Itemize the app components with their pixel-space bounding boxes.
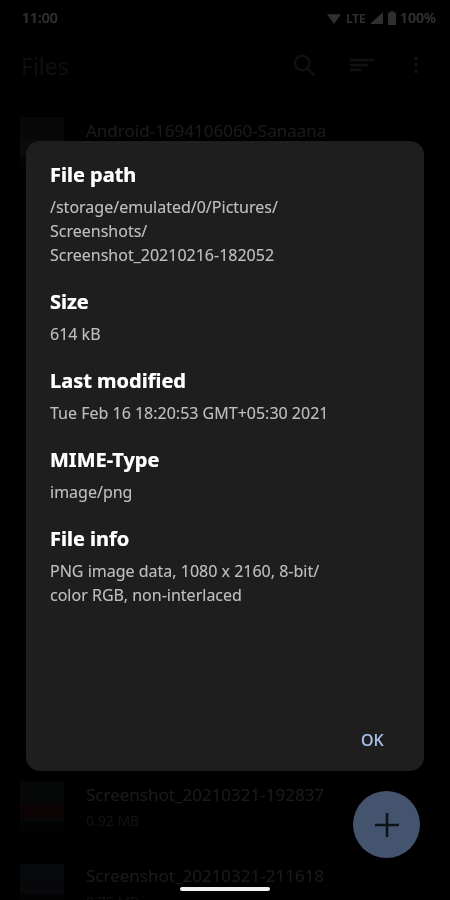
staticText: 100% [400,8,436,27]
staticText: File info [50,525,130,552]
staticText: 0.75 MB [86,892,140,900]
staticText: /storage/emulated/0/Pictures/ Screenshot… [50,196,278,266]
button[interactable]: Search [280,41,328,89]
staticText: image/png [50,481,133,503]
button[interactable]: Screenshot_20210321-192837 [0,770,450,842]
button[interactable]: OK [349,721,396,759]
staticText: PNG image data, 1080 x 2160, 8-bit/ colo… [50,560,320,606]
staticText: Screenshot_20210321-192837 [86,783,325,806]
staticText: MIME-Type [50,446,160,473]
button[interactable]: Android-1694106060-Sanaana [0,106,450,178]
staticText: OK [361,729,384,751]
staticText: File path [50,161,137,188]
button[interactable]: Sort [338,41,386,89]
staticText: 11:00 [22,8,58,27]
staticText: Screenshot_20210321-211618 [86,864,325,887]
button[interactable]: Add [353,791,420,858]
staticText: Files [21,50,69,81]
staticText: 0.92 MB [86,811,140,830]
staticText: Android-1694106060-Sanaana [86,119,327,142]
staticText: Size [50,288,89,315]
button[interactable]: Screenshot_20210321-211618 [0,864,450,900]
staticText: 614 kB [50,323,101,345]
staticText: Tue Feb 16 18:20:53 GMT+05:30 2021 [50,402,329,424]
staticText: Last modified [50,367,186,394]
staticText: LTE [346,10,366,26]
